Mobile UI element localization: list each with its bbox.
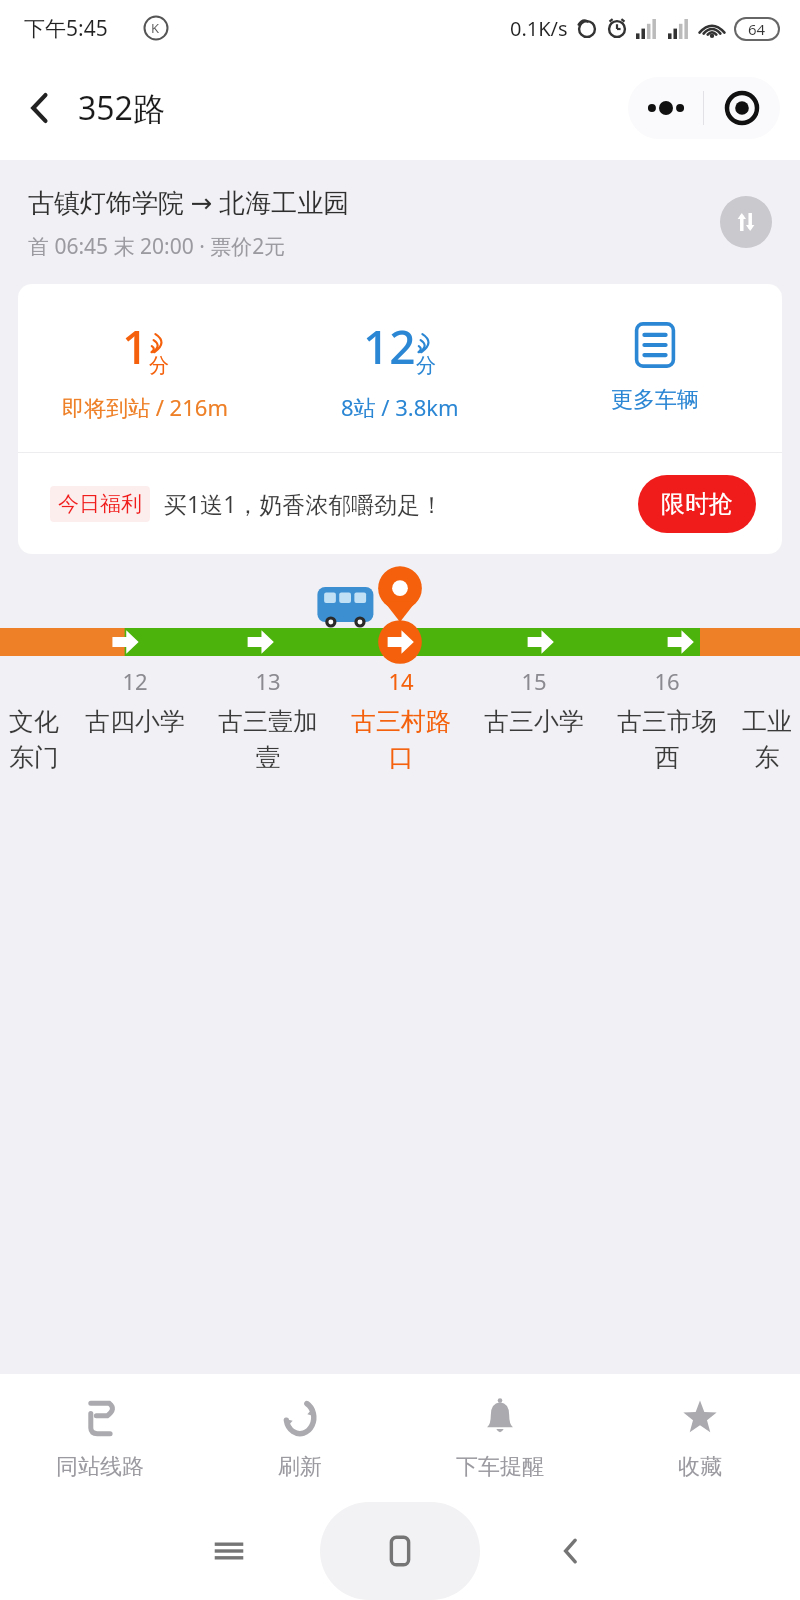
button[interactable]: 1 [18, 284, 272, 452]
staticText: 分 [149, 353, 169, 378]
staticText: 12 [122, 666, 148, 696]
staticText: 更多车辆 [611, 386, 699, 414]
staticText: 买1送1，奶香浓郁嚼劲足！ [164, 488, 444, 519]
staticText: 古镇灯饰学院 → 北海工业园 [28, 184, 350, 220]
button[interactable]: 今日福利 [18, 453, 782, 554]
staticText: 工业 东 [742, 706, 792, 773]
button[interactable]: Reverse direction [720, 196, 772, 248]
staticText: 352路 [78, 86, 165, 130]
staticText: 收藏 [678, 1453, 722, 1481]
button[interactable]: 15 [467, 666, 600, 737]
button[interactable]: 工业 东 [733, 666, 800, 773]
staticText: 下午5:45 [24, 14, 108, 43]
staticText: 8站 / 3.8km [341, 392, 459, 422]
staticText: 64 [748, 19, 766, 39]
staticText: 即将到站 / 216m [62, 392, 228, 422]
button[interactable]: 刷新 [200, 1374, 400, 1502]
button[interactable]: Back [10, 78, 70, 138]
staticText: 13 [255, 666, 281, 696]
staticText: 同站线路 [56, 1453, 144, 1481]
staticText: K [151, 19, 160, 37]
staticText: 古三村路 口 [351, 706, 451, 773]
button[interactable]: 同站线路 [0, 1374, 200, 1502]
staticText: 下车提醒 [456, 1453, 544, 1481]
button[interactable]: 16 [600, 666, 733, 773]
button[interactable]: 下车提醒 [400, 1374, 600, 1502]
staticText: 1 [122, 315, 149, 378]
button[interactable]: 限时抢 [638, 475, 756, 533]
staticText: 文化 东门 [9, 706, 59, 773]
button[interactable]: Close [704, 77, 780, 139]
staticText: 首 06:45 末 20:00 · 票价2元 [28, 232, 286, 261]
button[interactable]: Home [377, 1528, 423, 1574]
button[interactable]: Recents [212, 1534, 246, 1568]
staticText: 15 [521, 666, 547, 696]
button[interactable]: 收藏 [600, 1374, 800, 1502]
staticText: 0.1K/s [510, 15, 568, 42]
staticText: 古三小学 [484, 706, 584, 737]
button[interactable]: 文化 东门 [0, 666, 68, 773]
staticText: 16 [654, 666, 680, 696]
staticText: 14 [388, 666, 414, 696]
staticText: 限时抢 [661, 489, 733, 519]
staticText: 今日福利 [58, 491, 142, 517]
button[interactable]: Back [554, 1534, 588, 1568]
button[interactable]: 12 [68, 666, 201, 737]
staticText: 分 [416, 353, 436, 378]
button[interactable]: 13 [201, 666, 334, 773]
button[interactable]: 更多车辆 [527, 284, 782, 452]
button[interactable]: 14 [334, 666, 467, 773]
staticText: 刷新 [278, 1453, 322, 1481]
button[interactable]: 12 [272, 284, 527, 452]
staticText: 12 [363, 315, 416, 378]
staticText: 古三市场 西 [617, 706, 717, 773]
staticText: 古四小学 [85, 706, 185, 737]
staticText: 古三壹加 壹 [218, 706, 318, 773]
button[interactable]: More options [628, 77, 703, 139]
